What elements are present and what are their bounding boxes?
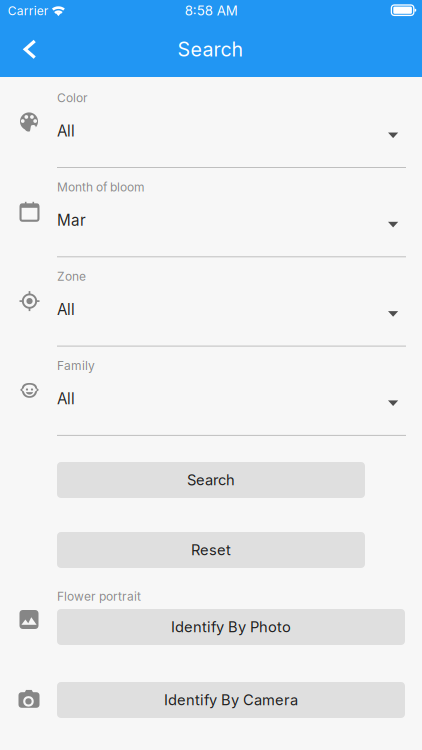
staticText: Identify By Camera: [164, 691, 298, 709]
staticText: Month of bloom: [57, 180, 145, 194]
staticText: Search: [177, 37, 243, 61]
staticText: Zone: [57, 269, 86, 284]
staticText: Color: [57, 90, 88, 105]
staticText: 8:58 AM: [185, 3, 238, 19]
button[interactable]: Search: [57, 462, 365, 498]
button[interactable]: Family: [0, 350, 422, 439]
staticText: All: [57, 300, 75, 319]
button[interactable]: Month of bloom: [0, 172, 422, 261]
staticText: All: [57, 390, 75, 408]
button[interactable]: Color: [0, 82, 422, 171]
button[interactable]: Zone: [0, 261, 422, 350]
button[interactable]: Back: [8, 27, 52, 71]
staticText: All: [57, 122, 75, 140]
staticText: Flower portrait: [57, 589, 141, 603]
button[interactable]: Identify By Photo: [57, 609, 405, 645]
staticText: Mar: [57, 211, 86, 229]
button[interactable]: Reset: [57, 532, 365, 568]
staticText: Identify By Photo: [171, 618, 291, 636]
staticText: Family: [57, 358, 95, 373]
staticText: Search: [187, 471, 235, 489]
staticText: Reset: [191, 541, 231, 559]
staticText: Carrier: [8, 4, 49, 18]
button[interactable]: Identify By Camera: [57, 682, 405, 718]
